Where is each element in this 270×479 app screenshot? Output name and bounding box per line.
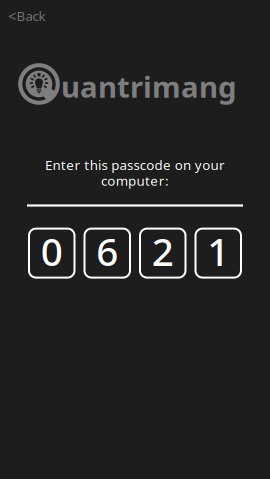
staticText: 2 [152, 225, 174, 277]
staticText: < [8, 6, 16, 25]
staticText: 1 [207, 225, 229, 277]
staticText: computer: [101, 172, 169, 189]
staticText: Back [16, 7, 45, 25]
staticText: uantrimang [61, 67, 237, 106]
staticText: Enter this passcode on your [45, 156, 225, 174]
staticText: 0 [41, 225, 63, 277]
staticText: 6 [96, 225, 118, 277]
button[interactable]: < [0, 0, 57, 33]
